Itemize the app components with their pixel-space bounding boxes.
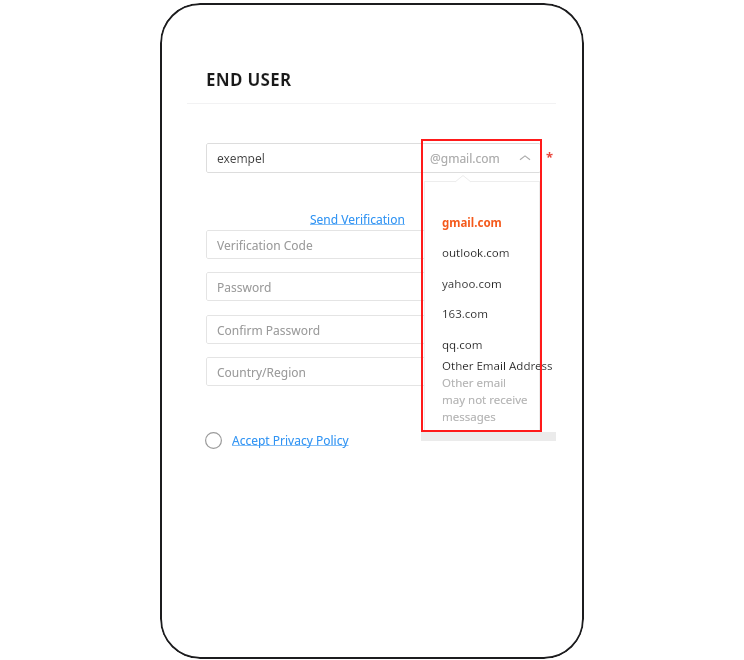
- staticText: qq.com: [442, 337, 483, 353]
- staticText: outlook.com: [442, 245, 510, 261]
- button[interactable]: yahoo.com: [424, 271, 540, 297]
- button[interactable]: Country/Region: [206, 357, 541, 386]
- staticText: *: [546, 148, 554, 166]
- staticText: yahoo.com: [442, 276, 502, 292]
- button[interactable]: exempel: [206, 143, 541, 173]
- button[interactable]: Confirm Password: [206, 315, 541, 344]
- staticText: Accept Privacy Policy: [232, 432, 349, 448]
- button[interactable]: gmail.com: [424, 210, 540, 236]
- staticText: Send Verification Code: [310, 211, 421, 227]
- staticText: gmail.com: [442, 215, 502, 231]
- staticText: messages: [442, 409, 496, 425]
- button[interactable]: Accept Privacy Policy: [205, 430, 353, 450]
- button[interactable]: qq.com: [424, 332, 540, 358]
- staticText: Other email addresses: [442, 375, 558, 391]
- staticText: may not receive: [442, 392, 528, 408]
- button[interactable]: Send Verification Code: [310, 211, 421, 227]
- button[interactable]: Email domain selector: [424, 144, 537, 172]
- staticText: Country/Region: [217, 364, 306, 380]
- button[interactable]: Other Email Address: [424, 358, 540, 428]
- staticText: 163.com: [442, 306, 489, 322]
- staticText: END USER: [206, 68, 292, 91]
- staticText: Password: [217, 279, 272, 295]
- staticText: Verification Code: [217, 237, 313, 253]
- staticText: exempel: [217, 150, 265, 166]
- staticText: Other Email Address: [442, 358, 553, 374]
- button[interactable]: outlook.com: [424, 240, 540, 266]
- button[interactable]: Password: [206, 272, 541, 301]
- staticText: Confirm Password: [217, 322, 321, 338]
- button[interactable]: Verification Code: [206, 230, 541, 259]
- staticText: @gmail.com: [430, 150, 500, 166]
- button[interactable]: 163.com: [424, 301, 540, 327]
